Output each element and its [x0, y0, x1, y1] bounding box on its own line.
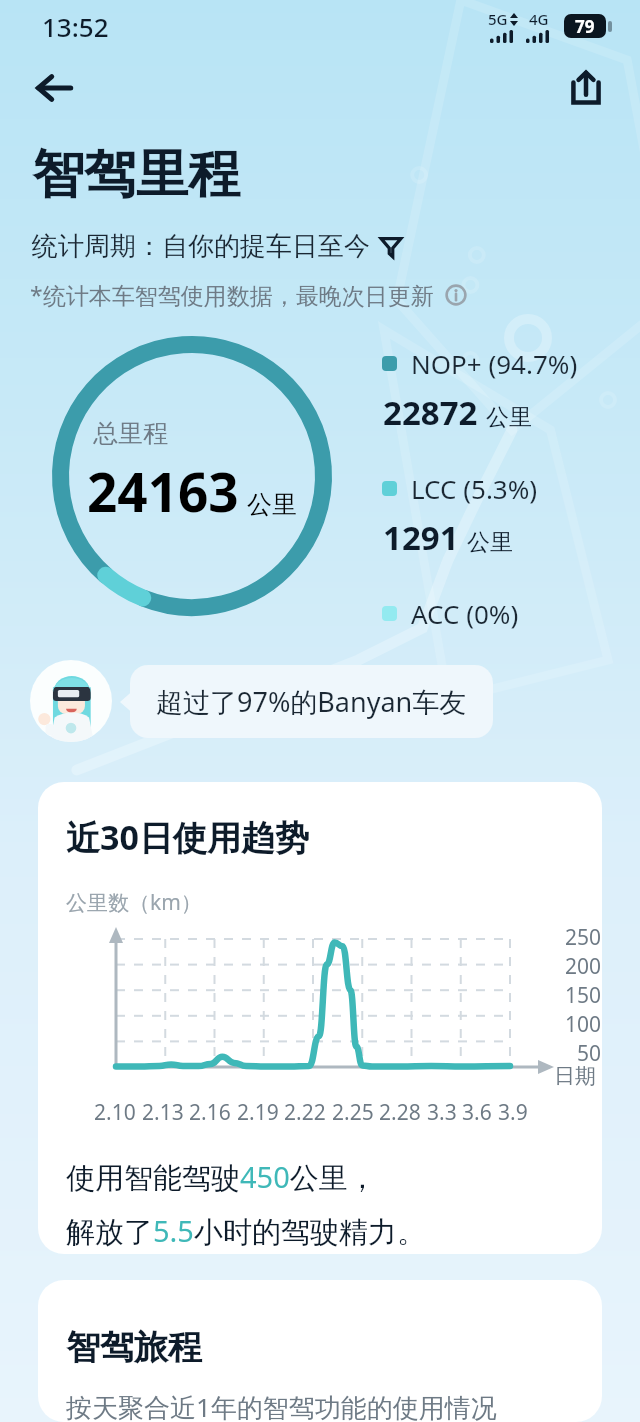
staticText: *统计本车智驾使用数据，最晚次日更新 — [30, 279, 434, 310]
staticText: 3.9 — [498, 1098, 528, 1127]
button[interactable]: 智驾旅程 — [38, 1280, 602, 1422]
button[interactable]: Share — [556, 58, 616, 118]
button[interactable]: LCC (5.3%) — [382, 471, 538, 560]
staticText: NOP+ (94.7%) — [411, 346, 578, 381]
staticText: 200 — [565, 952, 602, 981]
staticText: 13:52 — [42, 9, 109, 44]
staticText: ACC (0%) — [411, 596, 519, 631]
staticText: 公里 — [467, 528, 513, 557]
staticText: 5G — [488, 9, 508, 29]
staticText: 超过了97%的Banyan车友 — [156, 683, 467, 720]
staticText: 0 — [589, 1068, 602, 1071]
staticText: 2.22 — [284, 1098, 326, 1127]
button[interactable]: 超过了97%的Banyan车友 — [130, 665, 493, 738]
staticText: 22872 — [383, 390, 478, 435]
staticText: 智驾旅程 — [66, 1326, 202, 1369]
button[interactable]: Back — [24, 58, 84, 118]
staticText: 2.28 — [379, 1098, 421, 1127]
staticText: 日期 — [554, 1063, 596, 1089]
staticText: 2.10 — [94, 1098, 136, 1127]
staticText: 1291 — [383, 515, 459, 560]
staticText: 公里数（km） — [66, 888, 202, 917]
staticText: 解放了5.5小时的驾驶精力。 — [66, 1211, 426, 1251]
staticText: 2.25 — [332, 1098, 374, 1127]
staticText: 150 — [565, 981, 602, 1010]
staticText: 79 — [575, 15, 595, 38]
staticText: 250 — [565, 923, 602, 952]
staticText: 智驾里程 — [32, 142, 240, 208]
button[interactable]: NOP+ (94.7%) — [382, 346, 578, 435]
staticText: 50 — [577, 1039, 602, 1068]
staticText: 2.19 — [237, 1098, 279, 1127]
button[interactable]: 近30日使用趋势 — [38, 782, 602, 1254]
staticText: 4G — [529, 9, 549, 29]
staticText: 按天聚合近1年的智驾功能的使用情况 — [66, 1389, 497, 1422]
staticText: 3.6 — [462, 1098, 492, 1127]
button[interactable]: ACC (0%) — [382, 596, 519, 638]
staticText: 100 — [565, 1010, 602, 1039]
staticText: 近30日使用趋势 — [66, 814, 309, 860]
staticText: 2.16 — [189, 1098, 231, 1127]
staticText: 24163 — [87, 455, 239, 527]
staticText: 2.13 — [142, 1098, 184, 1127]
button[interactable]: 统计周期：自你的提车日至今 — [32, 230, 402, 263]
staticText: 公里 — [486, 403, 532, 432]
staticText: LCC (5.3%) — [411, 471, 538, 506]
staticText: 使用智能驾驶450公里， — [66, 1157, 377, 1197]
button[interactable] — [30, 660, 112, 742]
button[interactable]: Info — [443, 282, 469, 308]
staticText: 统计周期：自你的提车日至今 — [32, 230, 370, 263]
staticText: 总里程 — [93, 418, 168, 449]
staticText: 公里 — [247, 489, 297, 520]
staticText: 3.3 — [427, 1098, 457, 1127]
